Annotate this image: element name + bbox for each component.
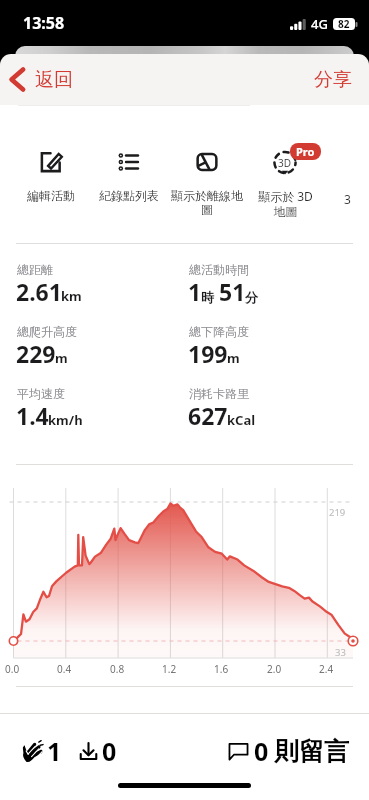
staticText: 編輯活動: [27, 188, 75, 203]
staticText: 2.61: [16, 276, 62, 307]
button[interactable]: 返回: [4, 67, 79, 92]
staticText: 627: [188, 400, 228, 431]
staticText: 顯示於離線地圖: [169, 188, 245, 218]
staticText: 4G: [311, 15, 328, 33]
staticText: 1.6: [214, 662, 229, 676]
staticText: m: [55, 349, 68, 367]
staticText: 82: [338, 17, 350, 31]
staticText: 199: [188, 338, 228, 369]
staticText: 1.2: [162, 662, 177, 676]
staticText: 3: [344, 191, 351, 207]
staticText: 總爬升高度: [17, 324, 77, 339]
staticText: 2.4: [319, 662, 334, 676]
staticText: 總活動時間: [189, 262, 249, 277]
staticText: 顯示於 3D 地圖: [258, 188, 313, 220]
staticText: 1: [188, 276, 202, 307]
staticText: 消耗卡路里: [189, 386, 249, 401]
button[interactable]: 分享: [307, 62, 359, 98]
staticText: 0.4: [57, 662, 72, 676]
button[interactable]: 紀錄點列表: [90, 145, 168, 203]
staticText: 分: [245, 289, 258, 305]
staticText: 時: [201, 289, 214, 305]
staticText: 3D: [278, 156, 292, 170]
staticText: Pro: [296, 144, 315, 159]
staticText: 33: [335, 646, 346, 659]
staticText: 1.4: [16, 400, 49, 431]
staticText: 返回: [35, 68, 73, 92]
staticText: 總距離: [17, 262, 53, 277]
staticText: kCal: [227, 411, 256, 429]
button[interactable]: Clap: [21, 734, 62, 768]
button[interactable]: 顯示於離線地圖: [168, 145, 246, 218]
staticText: 13:58: [23, 12, 65, 34]
staticText: km: [61, 287, 82, 305]
button[interactable]: 3D: [246, 145, 324, 220]
staticText: 2.0: [267, 662, 282, 676]
staticText: 平均速度: [17, 386, 65, 401]
button[interactable]: 0: [228, 734, 349, 768]
button[interactable]: Download: [78, 734, 117, 768]
staticText: 229: [16, 338, 56, 369]
staticText: 則留言: [274, 736, 349, 767]
staticText: 總下降高度: [189, 324, 249, 339]
staticText: km/h: [48, 411, 83, 429]
staticText: 紀錄點列表: [99, 188, 159, 203]
button[interactable]: 編輯活動: [12, 145, 90, 203]
staticText: 51: [219, 276, 246, 307]
staticText: 0: [102, 734, 117, 768]
staticText: 0: [254, 734, 269, 768]
staticText: 219: [329, 506, 346, 519]
staticText: 1: [47, 734, 62, 768]
staticText: m: [227, 349, 240, 367]
staticText: 0.0: [5, 662, 20, 676]
staticText: 0.8: [110, 662, 125, 676]
